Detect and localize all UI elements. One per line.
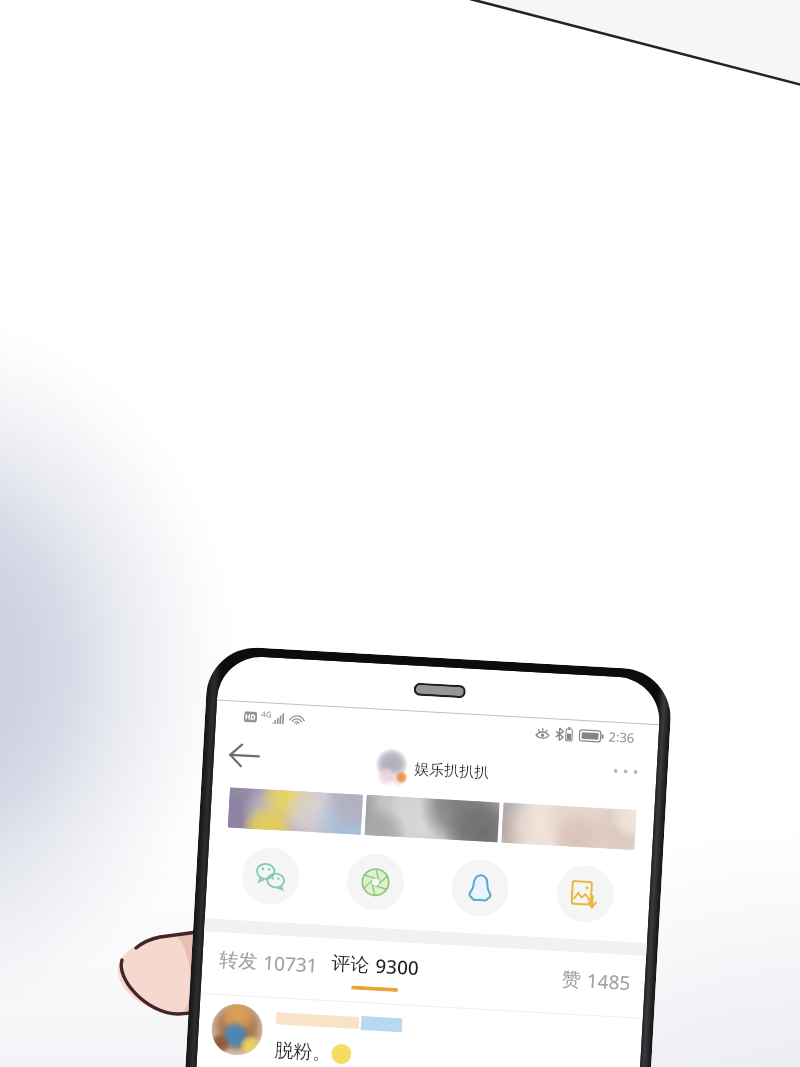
staticText: 转发 (219, 948, 258, 974)
button[interactable]: Save image (555, 864, 615, 924)
staticText: HD (245, 712, 256, 723)
staticText: 赞 (561, 967, 581, 992)
staticText: 评论 (331, 951, 370, 977)
button[interactable]: Share to QQ (450, 858, 510, 918)
button[interactable]: 转发 (219, 947, 319, 979)
button[interactable]: Share to WeChat Moments (345, 852, 406, 912)
staticText: 4G (261, 708, 272, 720)
button[interactable]: More options (609, 749, 642, 794)
button[interactable]: Back (228, 732, 260, 778)
staticText: 娱乐扒扒扒 (414, 760, 490, 783)
button[interactable]: 评论 (330, 950, 420, 993)
button[interactable]: 赞 (561, 966, 631, 996)
staticText: 2:36 (608, 727, 635, 747)
staticText: 10731 (263, 949, 319, 978)
staticText: 9300 (375, 953, 420, 981)
staticText: 1485 (586, 968, 631, 996)
button[interactable]: Share to WeChat (241, 846, 301, 906)
staticText: 脱粉。 (274, 1038, 332, 1065)
button[interactable]: 脱粉。 (210, 1003, 642, 1067)
